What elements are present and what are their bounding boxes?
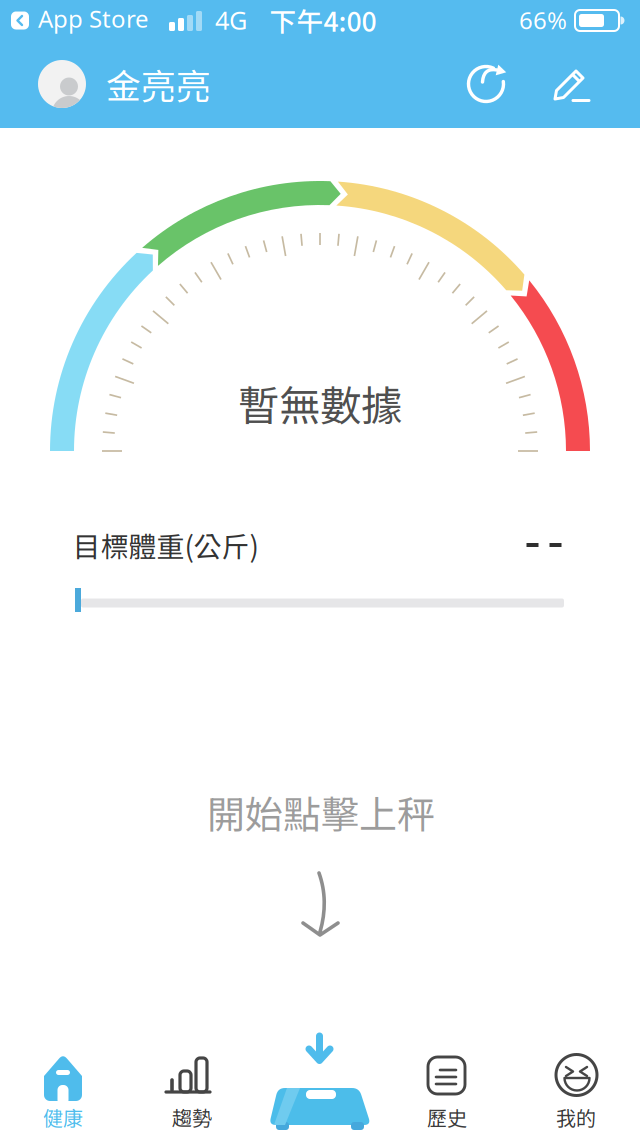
- staticText: 我的: [556, 1102, 596, 1131]
- button[interactable]: 帳戶: [38, 59, 211, 109]
- button[interactable]: 趨勢: [128, 1030, 256, 1136]
- staticText: 趨勢: [172, 1102, 212, 1131]
- staticText: 66%: [519, 4, 567, 36]
- staticText: App Store: [38, 3, 149, 34]
- staticText: 4G: [215, 3, 247, 37]
- staticText: 下午4:00: [269, 1, 376, 39]
- staticText: 開始點擊上秤: [207, 784, 435, 839]
- staticText: 歷史: [427, 1102, 467, 1131]
- button[interactable]: 重新整理: [456, 54, 516, 114]
- staticText: 目標體重(公斤): [72, 525, 258, 565]
- button[interactable]: Back to App Store: [11, 5, 149, 36]
- staticText: 暫無數據: [238, 373, 402, 433]
- button[interactable]: 健康: [0, 1030, 128, 1136]
- staticText: 健康: [43, 1102, 83, 1131]
- button[interactable]: 我的: [512, 1030, 640, 1136]
- staticText: 金亮亮: [106, 59, 211, 109]
- button[interactable]: 編輯: [541, 54, 601, 114]
- button[interactable]: 歷史: [384, 1030, 512, 1136]
- button[interactable]: 上秤: [256, 1030, 384, 1136]
